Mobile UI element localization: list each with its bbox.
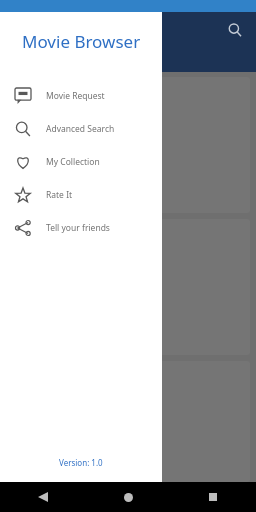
staticText: Version: 1.0 xyxy=(59,457,103,468)
staticText: Tell your friends xyxy=(46,222,110,234)
staticText: My Collection xyxy=(46,156,100,168)
button[interactable]: Advanced Search xyxy=(0,112,162,145)
staticText: Movie Browser xyxy=(44,21,135,39)
staticText: Advanced Search xyxy=(46,123,115,135)
staticText: Movie Request xyxy=(46,90,105,102)
button[interactable]: Star Wars: Episode VII… xyxy=(6,361,250,482)
button[interactable]: Back xyxy=(28,482,58,512)
button[interactable]: Big Hero 6 xyxy=(6,219,250,355)
staticText: Deadpool 2 xyxy=(12,183,53,193)
staticText: Star Wars: Episode VII… xyxy=(12,452,97,462)
button[interactable]: Search xyxy=(222,17,248,43)
staticText: Rate It xyxy=(46,189,73,201)
button[interactable]: My Collection xyxy=(0,145,162,178)
staticText: 2018 xyxy=(12,195,30,205)
button[interactable]: Home xyxy=(113,482,143,512)
button[interactable]: Deadpool 2 xyxy=(6,77,250,213)
staticText: Movie Browser xyxy=(22,30,141,53)
button[interactable]: Recents xyxy=(198,482,228,512)
button[interactable]: Tell your friends xyxy=(0,211,162,244)
button[interactable]: Rate It xyxy=(0,178,162,211)
button[interactable]: Movie Request xyxy=(0,79,162,112)
